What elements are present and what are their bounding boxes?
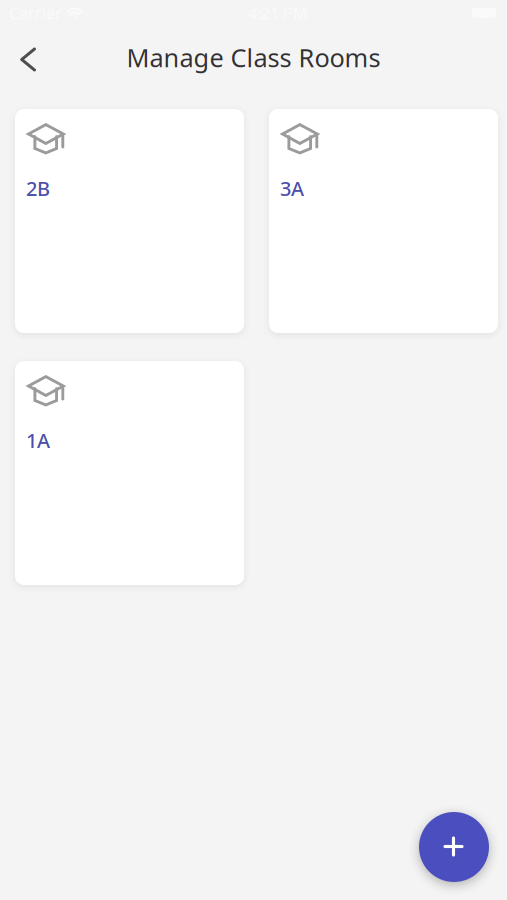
button[interactable]: 1A (15, 361, 244, 585)
staticText: 1A (26, 427, 50, 454)
button[interactable]: 3A (269, 109, 498, 333)
button[interactable]: 2B (15, 109, 244, 333)
button[interactable]: Back (0, 32, 51, 78)
staticText: 3A (280, 175, 304, 202)
staticText: 2B (26, 175, 50, 202)
button[interactable]: Add class room (419, 812, 489, 882)
staticText: Manage Class Rooms (126, 41, 380, 74)
